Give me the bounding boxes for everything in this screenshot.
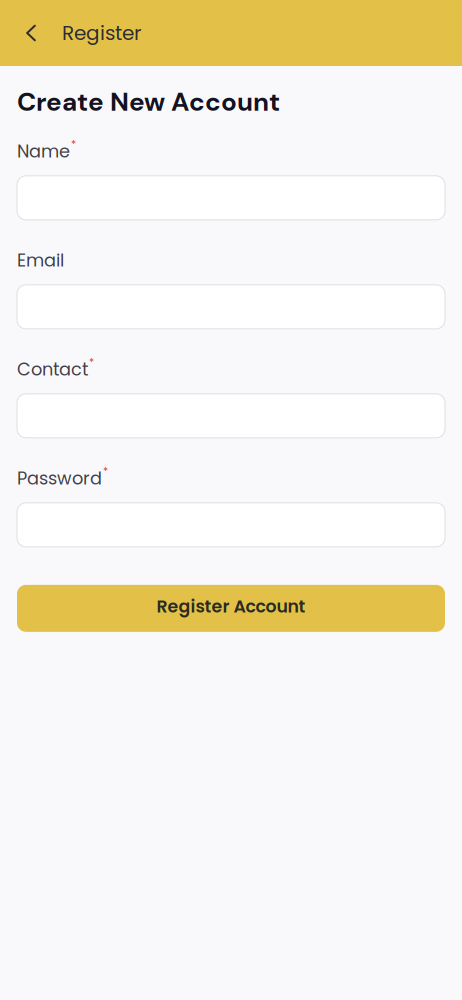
staticText: *	[71, 137, 76, 152]
button[interactable]: Back	[10, 11, 52, 55]
staticText: Password	[17, 466, 102, 491]
staticText: Email	[17, 248, 64, 273]
staticText: Contact	[17, 357, 88, 382]
staticText: Register	[62, 19, 141, 47]
staticText: Name	[17, 139, 70, 164]
staticText: *	[89, 355, 94, 370]
staticText: Register Account	[156, 594, 305, 618]
button[interactable]: Register Account	[17, 585, 445, 632]
staticText: Create New Account	[17, 85, 280, 119]
staticText: *	[103, 464, 108, 479]
button[interactable]: Register	[62, 19, 141, 47]
